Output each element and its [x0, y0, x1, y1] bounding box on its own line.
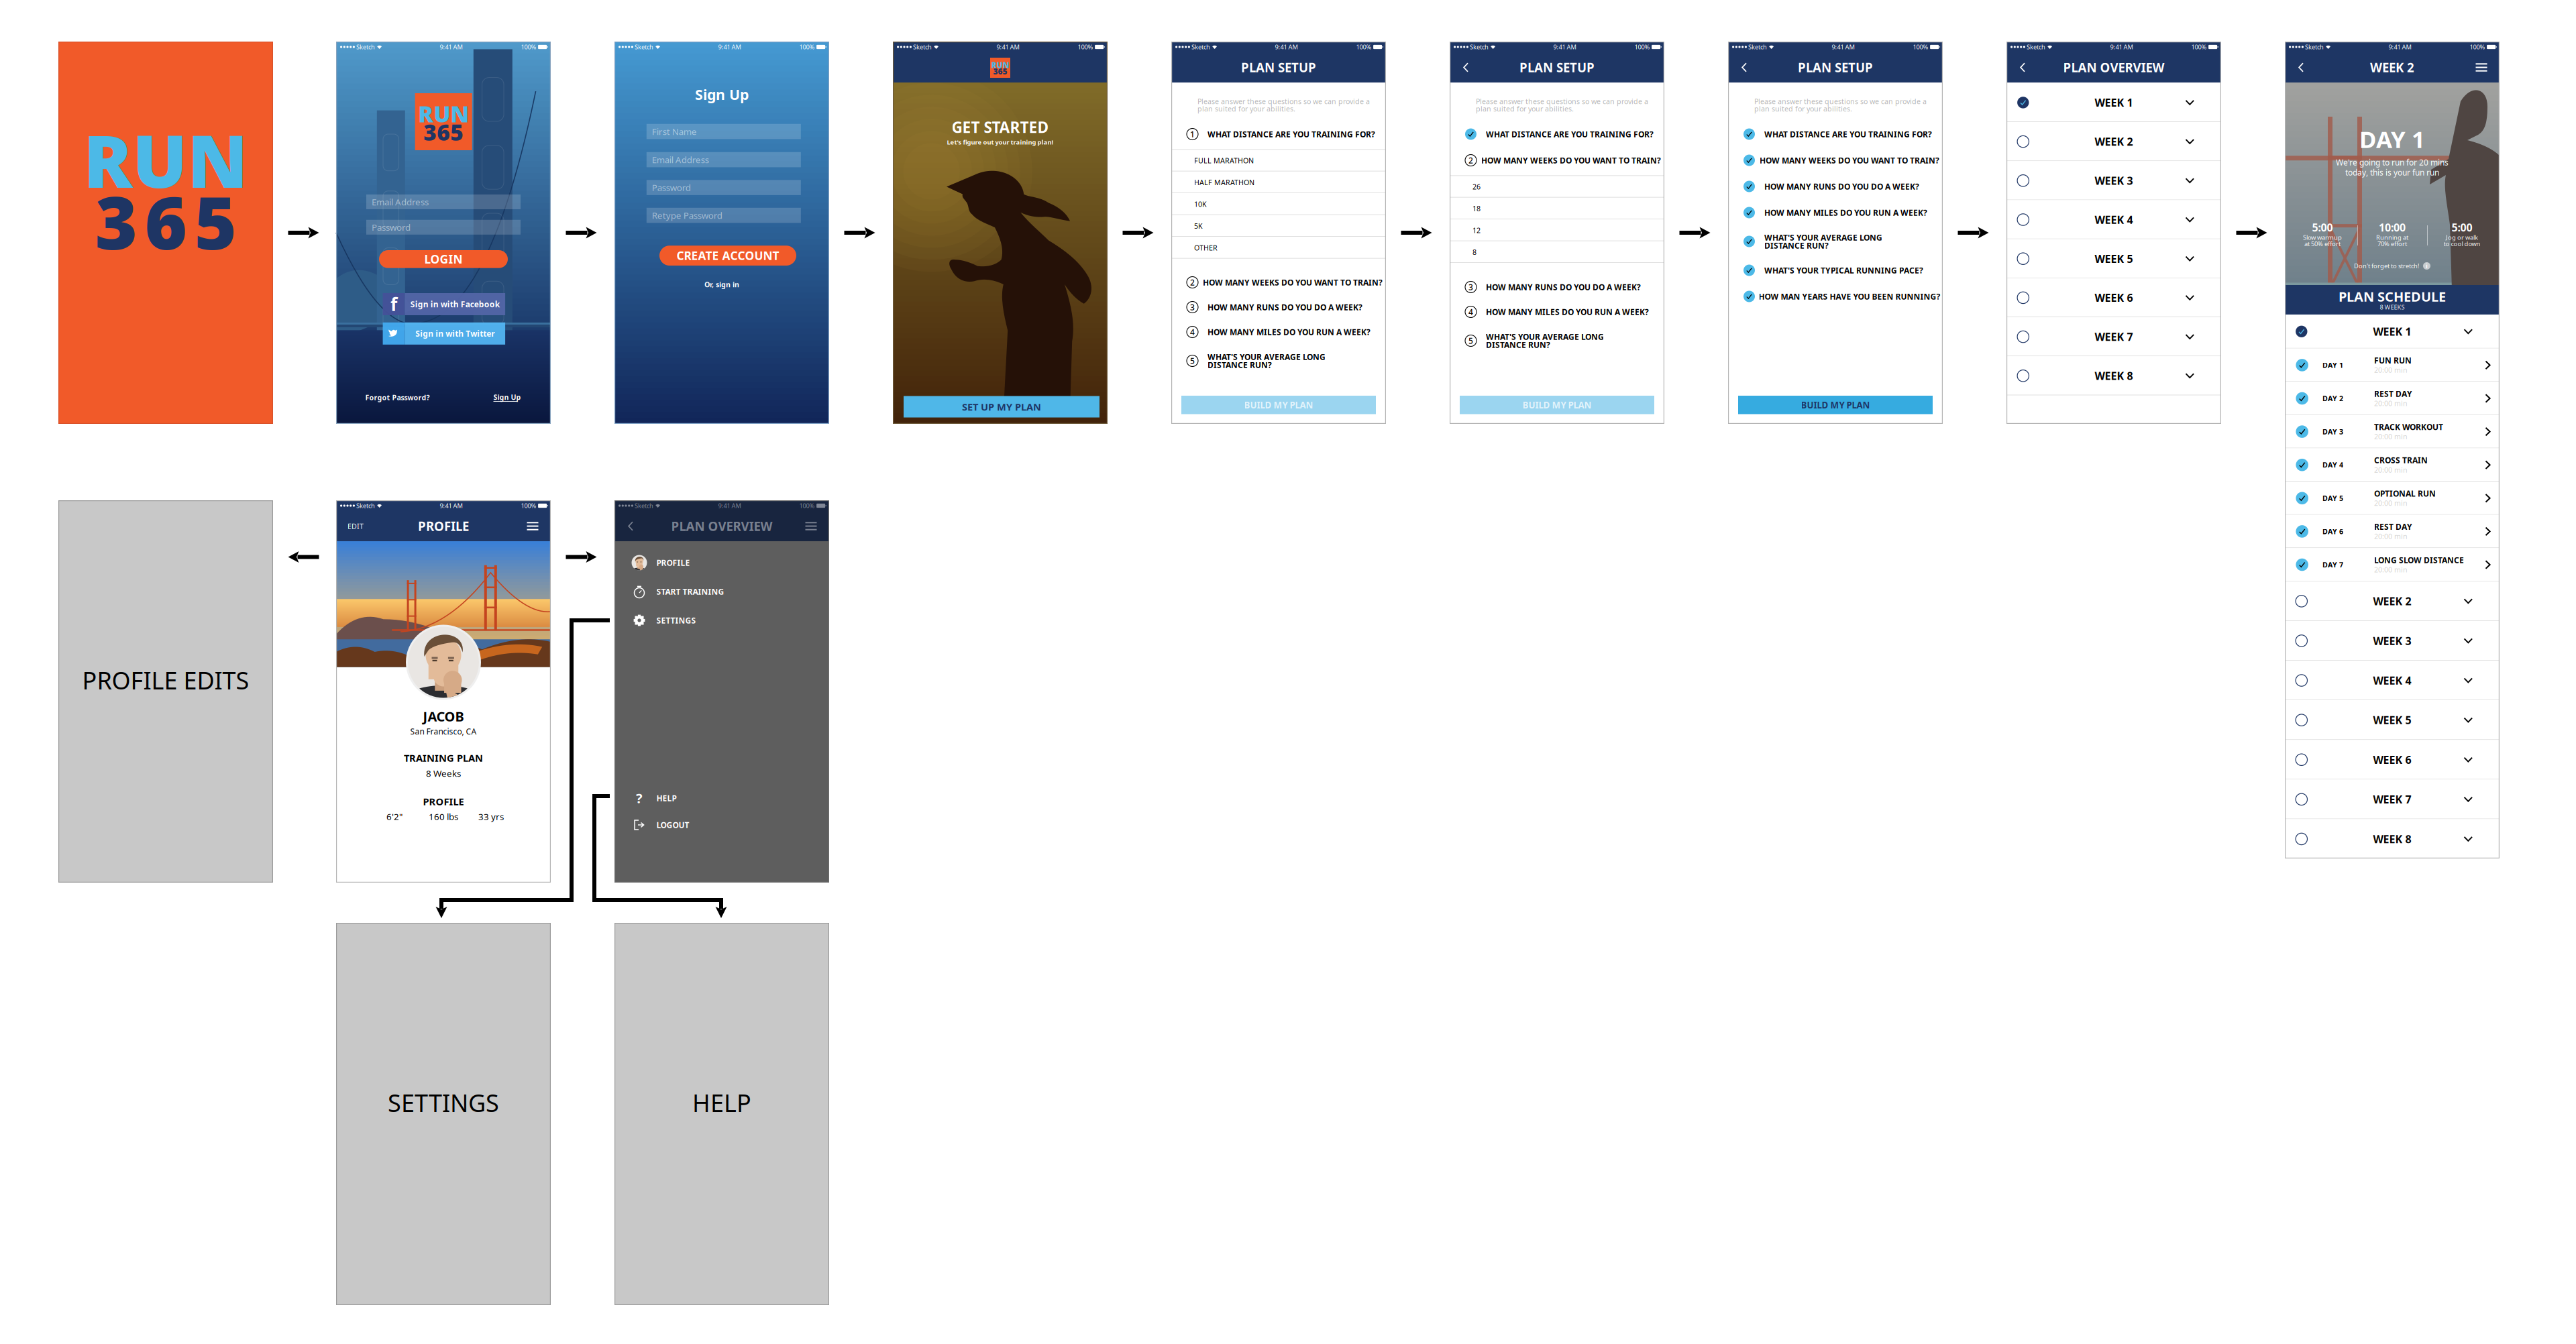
staticText: DAY 5: [2322, 493, 2343, 503]
button[interactable]: DAY 2: [2285, 382, 2500, 415]
staticText: DISTANCE RUN?: [1207, 359, 1272, 370]
button[interactable]: 12: [1450, 219, 1664, 241]
staticText: DAY 6: [2322, 527, 2343, 536]
button[interactable]: WEEK 7: [2006, 317, 2221, 356]
button[interactable]: DAY 5: [2285, 482, 2500, 515]
button[interactable]: WEEK 4: [2285, 661, 2500, 700]
staticText: BUILD MY PLAN: [1244, 399, 1313, 411]
button[interactable]: HALF MARATHON: [1171, 171, 1386, 193]
button[interactable]: 18: [1450, 198, 1664, 219]
button[interactable]: DAY 3: [2285, 415, 2500, 448]
button[interactable]: Forgot Password?: [369, 392, 426, 403]
button[interactable]: WEEK 7: [2285, 780, 2500, 819]
staticText: PLAN SETUP: [1241, 59, 1316, 76]
staticText: 8 WEEKS: [2380, 303, 2405, 311]
staticText: 100%: [521, 502, 536, 510]
staticText: REST DAY: [2374, 521, 2412, 532]
staticText: 8 Weeks: [426, 767, 461, 779]
button[interactable]: 26: [1450, 176, 1664, 198]
button[interactable]: SET UP MY PLAN: [904, 396, 1099, 417]
button[interactable]: 8: [1450, 241, 1664, 263]
button[interactable]: DAY 1: [2285, 348, 2500, 382]
button[interactable]: WEEK 2: [2285, 581, 2500, 621]
staticText: DAY 4: [2322, 460, 2343, 470]
button[interactable]: WEEK 5: [2006, 239, 2221, 278]
button[interactable]: Back: [2291, 52, 2311, 82]
button[interactable]: CREATE ACCOUNT: [659, 246, 796, 266]
button[interactable]: Back: [1734, 52, 1754, 82]
staticText: WHAT DISTANCE ARE YOU TRAINING FOR?: [1764, 129, 1932, 139]
staticText: ?: [636, 789, 643, 807]
button[interactable]: WEEK 2: [2006, 122, 2221, 161]
button[interactable]: DAY 4: [2285, 448, 2500, 482]
button[interactable]: WEEK 1: [2285, 315, 2500, 348]
staticText: HOW MANY MILES DO YOU RUN A WEEK?: [1764, 207, 1927, 218]
button[interactable]: WEEK 8: [2006, 356, 2221, 395]
button[interactable]: DAY 6: [2285, 515, 2500, 548]
button[interactable]: 10K: [1171, 193, 1386, 215]
staticText: 100%: [2470, 43, 2485, 51]
staticText: PLAN SETUP: [1798, 59, 1873, 76]
staticText: HOW MANY RUNS DO YOU DO A WEEK?: [1486, 282, 1641, 292]
button[interactable]: BUILD MY PLAN: [1460, 396, 1654, 414]
button[interactable]: BUILD MY PLAN: [1181, 396, 1376, 414]
staticText: 9:41 AM: [2110, 43, 2133, 51]
button[interactable]: START TRAINING: [614, 583, 829, 600]
button[interactable]: WEEK 6: [2285, 740, 2500, 780]
staticText: HOW MANY RUNS DO YOU DO A WEEK?: [1764, 181, 1919, 192]
staticText: plan suited for your abilities.: [1476, 104, 1574, 113]
staticText: f: [390, 292, 397, 316]
button[interactable]: OTHER: [1171, 237, 1386, 259]
staticText: PROFILE EDITS: [82, 664, 249, 696]
button[interactable]: BUILD MY PLAN: [1738, 396, 1933, 414]
button[interactable]: Menu: [801, 511, 821, 541]
button[interactable]: Back: [1456, 52, 1476, 82]
staticText: HELP: [656, 793, 677, 803]
staticText: 5:00: [2312, 220, 2333, 234]
button[interactable]: SETTINGS: [614, 612, 829, 628]
staticText: 9:41 AM: [996, 43, 1019, 51]
button[interactable]: f: [383, 293, 505, 315]
staticText: DAY 7: [2322, 560, 2343, 569]
staticText: HOW MANY RUNS DO YOU DO A WEEK?: [1207, 302, 1362, 312]
button[interactable]: LOGOUT: [614, 817, 829, 833]
staticText: 4: [1468, 306, 1473, 317]
button[interactable]: Sign in with Twitter: [383, 322, 505, 345]
button[interactable]: Or, sign in: [614, 42, 829, 52]
staticText: CREATE ACCOUNT: [677, 248, 779, 263]
button[interactable]: DAY 7: [2285, 548, 2500, 581]
button[interactable]: LOGIN: [379, 250, 508, 268]
button[interactable]: WEEK 8: [2285, 819, 2500, 859]
staticText: PLAN SETUP: [1519, 59, 1595, 76]
button[interactable]: PROFILE: [614, 555, 829, 571]
staticText: Don't forget to stretch!: [2354, 262, 2420, 270]
staticText: WEEK 7: [2095, 330, 2133, 344]
button[interactable]: Menu: [523, 511, 543, 541]
staticText: WEEK 8: [2373, 832, 2411, 846]
button[interactable]: WEEK 5: [2285, 700, 2500, 740]
staticText: Running at: [2376, 233, 2408, 242]
button[interactable]: WEEK 6: [2006, 278, 2221, 317]
staticText: 2: [1468, 155, 1473, 166]
staticText: 20:00 min: [2374, 399, 2408, 408]
button[interactable]: FULL MARATHON: [1171, 150, 1386, 171]
button[interactable]: WEEK 3: [2006, 161, 2221, 200]
button[interactable]: Stretching info: [2354, 262, 2430, 270]
staticText: 100%: [521, 43, 536, 51]
button[interactable]: WEEK 1: [2006, 83, 2221, 122]
staticText: Sketch: [355, 502, 375, 510]
button[interactable]: WEEK 4: [2006, 200, 2221, 239]
staticText: 6: [145, 173, 187, 269]
button[interactable]: EDIT: [342, 511, 369, 541]
button[interactable]: WEEK 3: [2285, 621, 2500, 661]
button[interactable]: 5K: [1171, 215, 1386, 237]
button[interactable]: Back: [2012, 52, 2033, 82]
staticText: to cool down: [2444, 240, 2480, 248]
button[interactable]: Back: [621, 511, 641, 541]
staticText: HELP: [692, 1087, 751, 1119]
button[interactable]: ?: [614, 790, 829, 806]
staticText: We're going to run for 20 mins: [2336, 157, 2449, 168]
button[interactable]: Sign Up: [494, 392, 521, 403]
staticText: WHAT DISTANCE ARE YOU TRAINING FOR?: [1207, 129, 1375, 139]
button[interactable]: Menu: [2471, 52, 2491, 82]
